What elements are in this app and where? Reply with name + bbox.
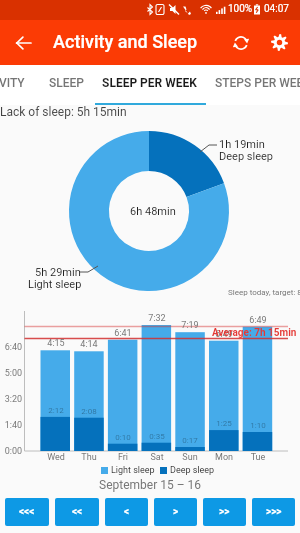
staticText: 1h 19min	[219, 138, 265, 151]
staticText: Sat	[142, 452, 172, 463]
staticText: STEPS PER WEE	[215, 76, 300, 90]
staticText: 6:49	[209, 329, 239, 340]
button[interactable]: Refresh	[224, 20, 257, 65]
button[interactable]: >	[154, 498, 197, 526]
button[interactable]: >>>	[252, 498, 295, 526]
staticText: Thu	[74, 452, 104, 463]
staticText: 04:07	[264, 3, 289, 15]
staticText: 1:25	[209, 419, 239, 428]
button[interactable]: <<	[55, 498, 99, 526]
staticText: 5:00	[2, 368, 22, 379]
staticText: Deep sleep	[170, 465, 215, 476]
staticText: 2:12	[41, 406, 71, 415]
button[interactable]: <	[105, 498, 148, 526]
staticText: >>>	[266, 506, 282, 518]
staticText: 2:08	[74, 407, 104, 416]
staticText: Activity and Sleep	[53, 31, 198, 52]
staticText: 0:00	[2, 446, 22, 457]
staticText: Light sleep	[28, 278, 82, 291]
staticText: 1:40	[2, 420, 22, 431]
staticText: <<	[72, 506, 83, 518]
staticText: Deep sleep	[219, 150, 273, 163]
staticText: VITY	[0, 76, 25, 90]
button[interactable]: <<<	[5, 498, 49, 526]
staticText: 7:19	[175, 320, 205, 331]
staticText: Sleep today, target: 8h	[228, 288, 300, 297]
staticText: 100%	[228, 3, 253, 15]
staticText: Light sleep	[111, 465, 155, 476]
staticText: 6h 48min	[130, 205, 176, 218]
staticText: >	[173, 506, 179, 518]
button[interactable]: Back	[5, 20, 42, 65]
staticText: 0:10	[108, 433, 138, 442]
staticText: September 15 – 16	[0, 478, 300, 492]
staticText: 0:17	[175, 436, 205, 445]
staticText: SLEEP PER WEEK	[102, 76, 197, 90]
staticText: Fri	[108, 452, 138, 463]
staticText: SLEEP	[49, 76, 84, 90]
staticText: 1:10	[243, 421, 273, 430]
staticText: 4:14	[74, 339, 104, 350]
button[interactable]: Settings	[263, 20, 296, 65]
staticText: 5h 29min	[35, 266, 81, 279]
staticText: 6:40	[2, 342, 22, 353]
staticText: 3:20	[2, 394, 22, 405]
staticText: Lack of sleep: 5h 15min	[0, 105, 127, 119]
staticText: 6:49	[243, 315, 273, 326]
staticText: Wed	[41, 452, 71, 463]
staticText: 6:41	[108, 328, 138, 339]
staticText: <	[124, 506, 130, 518]
staticText: 0:35	[142, 432, 172, 441]
staticText: 7:32	[142, 313, 172, 324]
staticText: Tue	[243, 452, 273, 463]
staticText: >>	[219, 506, 230, 518]
staticText: 4:15	[41, 338, 71, 349]
button[interactable]: >>	[203, 498, 246, 526]
staticText: <<<	[19, 506, 35, 518]
staticText: Sun	[175, 452, 205, 463]
staticText: Average: 7h 15min	[212, 327, 297, 339]
staticText: Mon	[209, 452, 239, 463]
